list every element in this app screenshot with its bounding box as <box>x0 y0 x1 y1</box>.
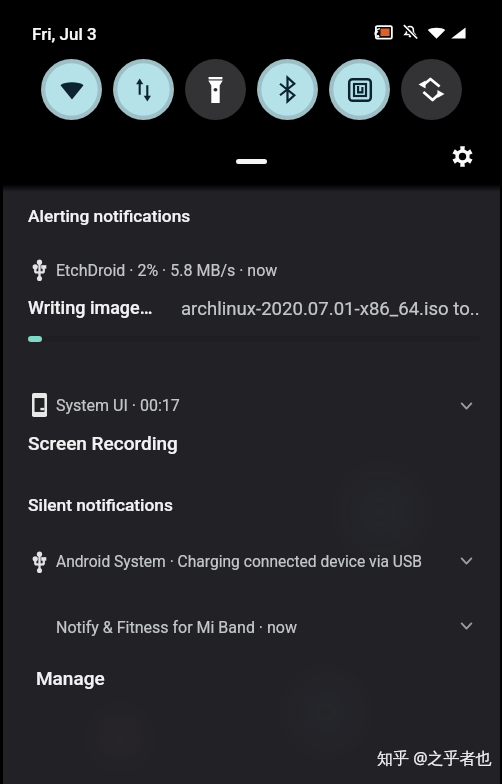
staticText: EtchDroid · 2% · 5.8 MB/s · now <box>56 261 278 280</box>
staticText: Silent notifications <box>28 495 173 515</box>
button[interactable]: Expand shade <box>236 159 267 164</box>
button[interactable]: Settings <box>447 141 477 171</box>
button[interactable]: Expand <box>454 549 478 573</box>
button[interactable]: Expand <box>454 614 478 638</box>
button[interactable]: Quick setting <box>185 59 246 120</box>
staticText: Fri, Jul 3 <box>32 24 97 44</box>
staticText: Android System · Charging connected devi… <box>56 553 422 571</box>
button[interactable]: Expand <box>454 394 478 418</box>
staticText: archlinux-2020.07.01-x86_64.iso to.. <box>181 298 480 320</box>
staticText: Writing image… <box>28 297 153 318</box>
button[interactable]: Quick setting <box>41 59 102 120</box>
button[interactable]: Manage <box>36 667 105 689</box>
staticText: System UI · 00:17 <box>56 396 180 415</box>
staticText: Notify & Fitness for Mi Band · now <box>56 618 297 637</box>
staticText: Manage <box>36 667 105 689</box>
button[interactable]: Quick setting <box>401 59 462 120</box>
staticText: 知乎 @之乎者也 <box>377 747 492 769</box>
staticText: Alerting notifications <box>28 206 191 226</box>
button[interactable]: Quick setting <box>329 59 390 120</box>
staticText: Screen Recording <box>28 432 178 454</box>
button[interactable]: Quick setting <box>113 59 174 120</box>
button[interactable]: Quick setting <box>257 59 318 120</box>
